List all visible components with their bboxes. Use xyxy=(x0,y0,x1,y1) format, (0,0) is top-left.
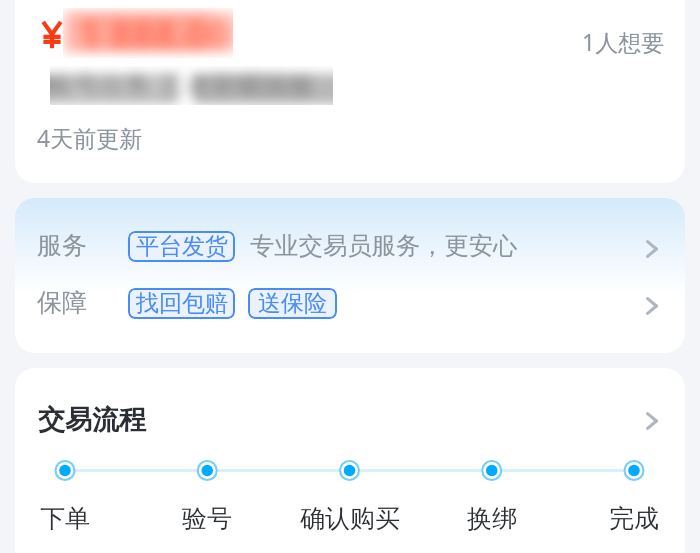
button[interactable]: 下单 xyxy=(5,498,125,538)
staticText: 服务 xyxy=(37,230,87,261)
staticText: 账号出售 王者荣耀国服安卓 xyxy=(50,66,330,105)
button[interactable] xyxy=(15,275,685,333)
button[interactable] xyxy=(15,390,685,448)
staticText: 确认购买 xyxy=(300,503,400,534)
button[interactable]: 保障详情 xyxy=(631,284,673,328)
button[interactable]: 换绑 xyxy=(432,498,552,538)
staticText: 1 888.00 xyxy=(79,8,230,57)
staticText: 完成 xyxy=(609,503,659,534)
staticText: 下单 xyxy=(40,503,90,534)
button[interactable]: 完成 xyxy=(574,498,694,538)
staticText: 1人想要 xyxy=(582,26,665,57)
button[interactable]: 平台发货 xyxy=(128,231,235,262)
button[interactable]: 确认购买 xyxy=(290,498,410,538)
staticText: 保障 xyxy=(37,287,87,318)
button[interactable]: 找回包赔 xyxy=(128,288,235,319)
staticText: 找回包赔 xyxy=(136,289,228,318)
button[interactable]: 验号 xyxy=(147,498,267,538)
button[interactable]: 交易流程详情 xyxy=(631,399,673,443)
staticText: 平台发货 xyxy=(136,232,228,261)
button[interactable]: 送保险 xyxy=(248,288,337,319)
staticText: 交易流程 xyxy=(38,403,146,437)
button[interactable] xyxy=(15,217,685,275)
staticText: 送保险 xyxy=(258,289,327,318)
staticText: 4天前更新 xyxy=(37,122,143,153)
button[interactable]: 服务详情 xyxy=(631,227,673,271)
staticText: 验号 xyxy=(182,503,232,534)
staticText: 换绑 xyxy=(467,503,517,534)
staticText: 专业交易员服务，更安心 xyxy=(250,231,518,262)
